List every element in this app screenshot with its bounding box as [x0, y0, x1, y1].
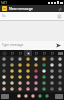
button[interactable]: Emoji — [8, 74, 16, 80]
button[interactable]: Emoji — [32, 68, 40, 74]
button[interactable]: To — [0, 12, 64, 20]
button[interactable]: Emoji — [40, 80, 48, 86]
button[interactable]: Emoji category 4 — [24, 50, 32, 56]
button[interactable]: Emoji — [24, 86, 32, 92]
button[interactable]: Emoji — [16, 56, 24, 62]
button[interactable]: Emoji — [0, 86, 8, 92]
button[interactable]: App icon — [2, 6, 7, 11]
staticText: Type message — [2, 43, 24, 47]
button[interactable]: Emoji — [56, 80, 64, 86]
button[interactable]: Emoji — [48, 74, 56, 80]
button[interactable]: Emoji category 5 — [32, 50, 40, 56]
button[interactable]: Emoji — [40, 74, 48, 80]
button[interactable]: Emoji — [40, 62, 48, 68]
button[interactable]: Emoji category 2 — [8, 50, 16, 56]
button[interactable]: Emoji — [40, 56, 48, 62]
staticText: New message — [9, 6, 57, 11]
button[interactable]: Emoji category 1 — [0, 50, 8, 56]
button[interactable]: Emoji — [8, 62, 16, 68]
button[interactable]: Emoji — [24, 56, 32, 62]
button[interactable]: Type message — [2, 43, 53, 48]
button[interactable]: Emoji category 3 — [16, 50, 24, 56]
button[interactable]: Emoji — [32, 74, 40, 80]
button[interactable]: ABC keyboard — [1, 94, 9, 99]
button[interactable]: Emoji — [0, 80, 8, 86]
button[interactable]: Emoji category 7 — [48, 50, 56, 56]
button[interactable]: Send — [55, 42, 62, 49]
button[interactable]: Emoji — [8, 56, 16, 62]
button[interactable]: Emoji — [8, 80, 16, 86]
button[interactable]: Emoji — [43, 92, 50, 100]
button[interactable]: Emoji — [56, 56, 64, 62]
button[interactable]: Emoji — [48, 56, 56, 62]
button[interactable]: Emoji — [32, 80, 40, 86]
button[interactable]: Emoji — [16, 74, 24, 80]
button[interactable]: Attach — [57, 6, 62, 11]
button[interactable]: Emoji category 6 — [40, 50, 48, 56]
button[interactable]: Emoji — [56, 86, 64, 92]
button[interactable]: Emoji — [56, 68, 64, 74]
button[interactable]: Emoji — [24, 68, 32, 74]
button[interactable]: Emoji — [32, 86, 40, 92]
button[interactable]: Emoji — [8, 86, 16, 92]
button[interactable]: Emoji — [56, 74, 64, 80]
button[interactable]: Emoji — [22, 92, 29, 100]
button[interactable]: Emoji — [56, 62, 64, 68]
button[interactable]: Emoji — [24, 74, 32, 80]
staticText: 5:01 — [1, 1, 7, 5]
button[interactable]: Emoji — [36, 92, 43, 100]
button[interactable]: Backspace — [55, 94, 63, 99]
button[interactable]: Emoji — [32, 62, 40, 68]
button[interactable]: Emoji — [40, 86, 48, 92]
button[interactable]: Emoji — [16, 62, 24, 68]
button[interactable]: Emoji — [0, 62, 8, 68]
button[interactable]: Emoji — [0, 68, 8, 74]
button[interactable]: Emoji — [40, 68, 48, 74]
button[interactable]: Emoji — [24, 62, 32, 68]
button[interactable]: Emoji — [48, 68, 56, 74]
button[interactable]: Emoji — [0, 74, 8, 80]
button[interactable]: Backspace — [56, 50, 64, 56]
button[interactable]: Emoji — [29, 92, 36, 100]
button[interactable]: Emoji — [16, 86, 24, 92]
button[interactable]: Emoji — [24, 80, 32, 86]
button[interactable]: Emoji — [16, 68, 24, 74]
button[interactable]: Emoji — [0, 56, 8, 62]
button[interactable]: Choose contact — [57, 14, 62, 19]
button[interactable]: Emoji — [48, 86, 56, 92]
button[interactable]: Emoji — [32, 56, 40, 62]
button[interactable]: Emoji — [15, 92, 22, 100]
button[interactable]: Emoji — [48, 80, 56, 86]
button[interactable]: Emoji — [16, 80, 24, 86]
button[interactable]: Emoji — [48, 62, 56, 68]
staticText: To — [2, 14, 57, 18]
button[interactable]: Emoji — [8, 68, 16, 74]
